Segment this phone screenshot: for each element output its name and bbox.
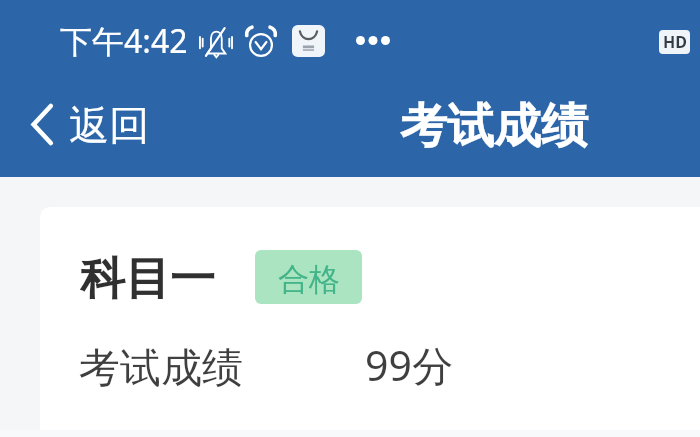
staticText: 99分 (365, 337, 453, 393)
button[interactable]: 考试成绩 (40, 333, 700, 399)
button[interactable]: 合格 (255, 250, 362, 304)
other: Shop (292, 25, 325, 57)
button[interactable]: 科目一 (40, 207, 700, 437)
staticText: 考试成绩 (400, 97, 588, 156)
button[interactable]: 返回 (0, 76, 163, 173)
staticText: 考试成绩 (79, 343, 243, 395)
staticText: HD (663, 31, 687, 53)
other: HD calling (659, 30, 690, 54)
staticText: 科目一 (80, 251, 215, 308)
other: Silent mode (198, 26, 234, 58)
button[interactable]: More options (356, 31, 390, 50)
staticText: 返回 (69, 100, 149, 150)
staticText: 合格 (278, 260, 340, 299)
other: Alarm (246, 27, 276, 57)
staticText: 下午4:42 (60, 19, 188, 63)
